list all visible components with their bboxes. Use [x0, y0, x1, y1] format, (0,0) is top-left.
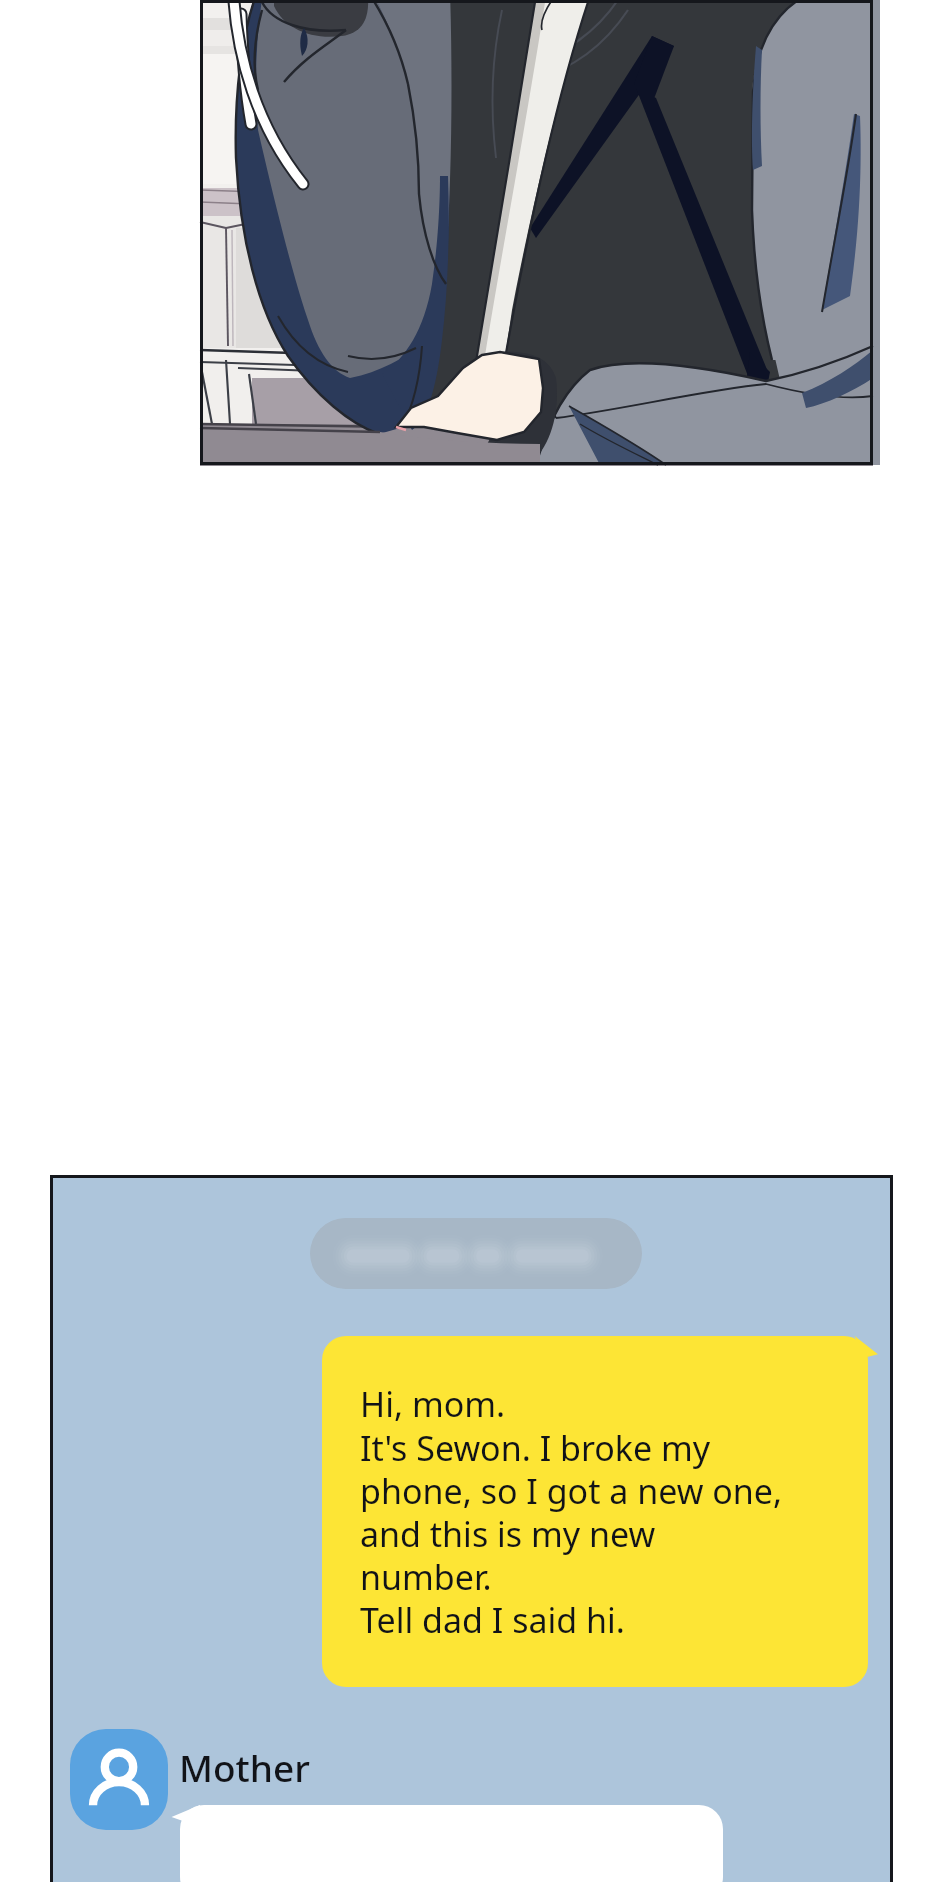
staticText: Hi, mom. It's Sewon. I broke my phone, s…: [360, 1381, 783, 1643]
staticText: Mother: [179, 1742, 310, 1792]
button[interactable]: Mother profile photo: [70, 1729, 168, 1830]
button[interactable]: [310, 1218, 642, 1289]
button[interactable]: Hi, mom. It's Sewon. I broke my phone, s…: [322, 1336, 868, 1687]
